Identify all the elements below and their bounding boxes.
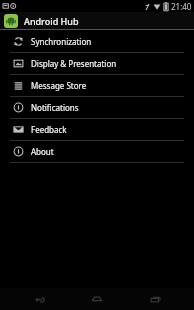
staticText: About <box>31 146 54 157</box>
button[interactable]: Android Hub <box>0 12 194 29</box>
staticText: Display & Presentation <box>31 58 117 69</box>
staticText: 21:40 <box>171 1 192 12</box>
staticText: Message Store <box>31 80 87 91</box>
staticText: Synchronization <box>31 36 92 47</box>
button[interactable]: Back <box>17 288 61 310</box>
button[interactable]: Display & Presentation <box>0 53 194 74</box>
button[interactable]: About <box>0 141 194 162</box>
button[interactable]: Home <box>75 288 119 310</box>
staticText: Feedback <box>31 124 67 135</box>
button[interactable]: Recent apps <box>133 288 177 310</box>
button[interactable]: Synchronization <box>0 31 194 52</box>
staticText: Android Hub <box>24 15 79 27</box>
button[interactable]: Notifications <box>0 97 194 118</box>
button[interactable]: Message Store <box>0 75 194 96</box>
staticText: Notifications <box>31 102 79 113</box>
button[interactable]: Feedback <box>0 119 194 140</box>
